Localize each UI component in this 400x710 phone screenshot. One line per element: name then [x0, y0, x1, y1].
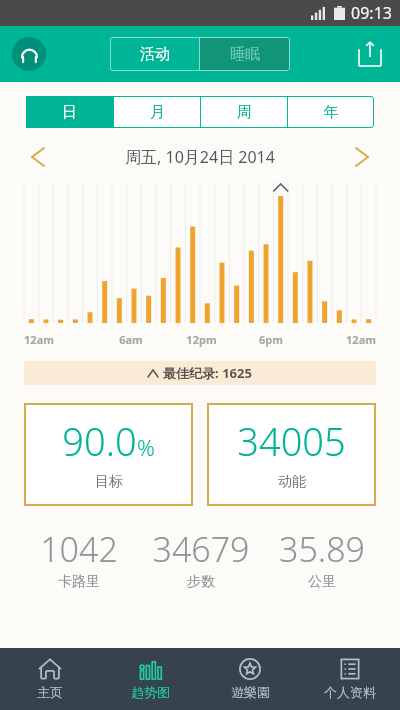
- staticText: 90.0: [62, 415, 137, 467]
- button[interactable]: 日: [26, 96, 113, 128]
- staticText: 12pm: [186, 332, 217, 347]
- staticText: 34005: [237, 415, 346, 467]
- staticText: 卡路里: [58, 573, 100, 591]
- staticText: 1042: [40, 526, 118, 572]
- button[interactable]: Logo: [12, 37, 46, 71]
- staticText: %: [137, 432, 155, 462]
- button[interactable]: 35.89: [261, 526, 382, 591]
- button[interactable]: 主页: [0, 648, 100, 710]
- staticText: 35.89: [279, 526, 365, 572]
- button[interactable]: 趋势图: [100, 648, 200, 710]
- staticText: 12am: [24, 332, 54, 347]
- staticText: 动能: [278, 473, 306, 491]
- staticText: 周: [237, 103, 252, 122]
- button[interactable]: 34005: [207, 403, 376, 506]
- staticText: 6am: [119, 332, 143, 347]
- button[interactable]: Share: [352, 36, 388, 72]
- staticText: 遊樂園: [231, 684, 270, 700]
- staticText: 年: [324, 103, 339, 122]
- button[interactable]: Next day: [348, 143, 376, 171]
- button[interactable]: 月: [114, 96, 200, 128]
- staticText: 目标: [95, 473, 123, 491]
- staticText: 公里: [308, 573, 336, 591]
- staticText: 6pm: [259, 332, 283, 347]
- staticText: 活动: [140, 45, 170, 64]
- staticText: 最佳纪录: 1625: [163, 364, 252, 382]
- button[interactable]: 34679: [140, 526, 261, 591]
- staticText: 12am: [346, 332, 376, 347]
- staticText: 周五, 10月24日 2014: [125, 146, 275, 168]
- staticText: 34679: [152, 526, 250, 572]
- button[interactable]: Previous day: [24, 143, 52, 171]
- staticText: 睡眠: [230, 45, 260, 64]
- button[interactable]: 周: [201, 96, 287, 128]
- button[interactable]: 1042: [18, 526, 140, 591]
- button[interactable]: 遊樂園: [200, 648, 300, 710]
- button[interactable]: 90.0: [24, 403, 193, 506]
- button[interactable]: 年: [288, 96, 374, 128]
- button[interactable]: 睡眠: [200, 37, 290, 71]
- staticText: 步数: [187, 573, 215, 591]
- button[interactable]: 个人资料: [300, 648, 400, 710]
- staticText: 趋势图: [131, 684, 170, 700]
- button[interactable]: 活动: [110, 37, 199, 71]
- staticText: 月: [150, 103, 165, 122]
- staticText: 日: [62, 103, 77, 122]
- staticText: 09:13: [351, 2, 392, 24]
- staticText: 主页: [37, 684, 63, 700]
- button[interactable]: 最佳纪录: 1625: [24, 361, 376, 385]
- staticText: 个人资料: [324, 684, 376, 700]
